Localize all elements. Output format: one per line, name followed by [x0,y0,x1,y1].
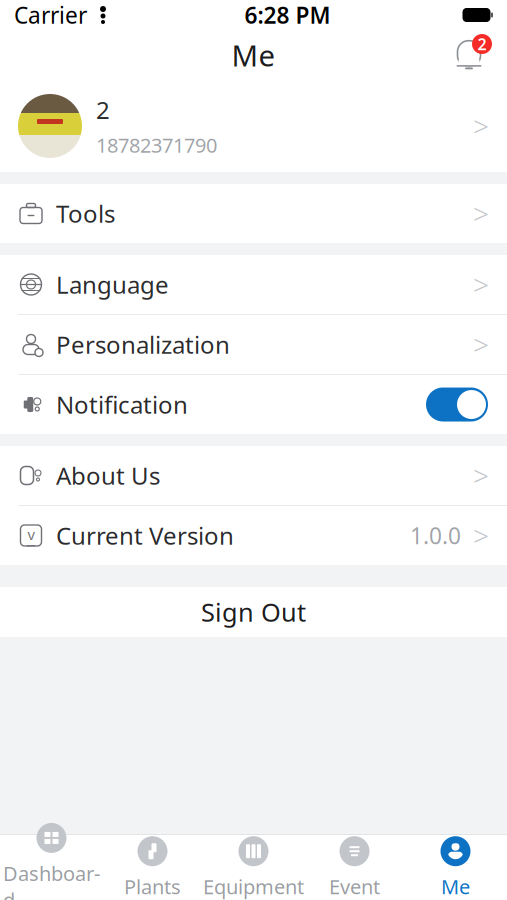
staticText: Current Version [56,520,234,551]
staticText: > [473,517,489,554]
button[interactable]: Equipment [203,835,304,900]
staticText: 1.0.0 [410,520,461,550]
button[interactable]: Notifications [443,32,495,78]
staticText: 2 [96,94,110,126]
button[interactable]: Personalization [0,315,507,374]
staticText: > [473,457,489,494]
staticText: > [473,326,489,363]
staticText: Language [56,269,169,300]
button[interactable]: 2 [0,80,507,172]
staticText: Carrier [14,0,87,30]
staticText: > [473,107,489,145]
staticText: Equipment [203,873,304,900]
button[interactable]: Notification toggle [425,385,489,423]
staticText: Notification [56,389,188,420]
staticText: > [473,266,489,303]
button[interactable]: v [0,506,507,565]
staticText: 18782371790 [96,132,217,158]
button[interactable]: About Us [0,446,507,505]
staticText: Event [329,873,380,900]
button[interactable]: Event [304,835,405,900]
button[interactable]: Tools [0,184,507,243]
staticText: Me [441,873,470,900]
staticText: Me [231,35,275,74]
staticText: 2 [477,33,486,55]
staticText: > [473,195,489,232]
button[interactable]: Dashboard [1,835,102,900]
staticText: Sign Out [201,595,306,629]
staticText: Dashboard [3,860,100,900]
staticText: v [27,525,34,544]
button[interactable]: Sign Out [0,587,507,637]
button[interactable]: Plants [102,835,203,900]
staticText: Tools [56,198,115,229]
staticText: Personalization [56,329,230,360]
button[interactable]: Language [0,255,507,314]
button[interactable]: Me [405,835,506,900]
staticText: About Us [56,460,160,491]
staticText: 6:28 PM [244,0,330,30]
staticText: Plants [124,873,181,900]
